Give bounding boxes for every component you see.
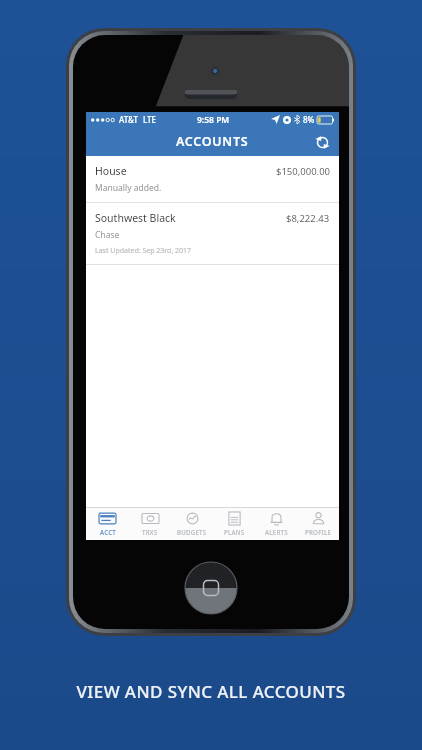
staticText: ALERTS <box>265 528 288 536</box>
button[interactable]: ALERTS <box>255 508 297 540</box>
button[interactable]: TRXS <box>129 508 171 540</box>
staticText: ACCOUNTS <box>176 133 249 150</box>
button[interactable]: House <box>86 156 339 202</box>
staticText: Chase <box>95 229 120 241</box>
staticText: $8,222.43 <box>286 212 330 225</box>
staticText: BUDGETS <box>177 528 207 536</box>
staticText: Last Updated: Sep 23rd, 2017 <box>95 246 192 256</box>
button[interactable]: ACCT <box>86 508 129 540</box>
staticText: $150,000.00 <box>276 165 330 178</box>
staticText: Southwest Black <box>95 211 176 225</box>
staticText: TRXS <box>142 528 158 536</box>
staticText: AT&T <box>119 114 138 125</box>
staticText: VIEW AND SYNC ALL ACCOUNTS <box>76 680 346 703</box>
button[interactable]: BUDGETS <box>171 508 213 540</box>
staticText: 9:58 PM <box>197 114 230 126</box>
button[interactable]: Southwest Black <box>86 203 339 264</box>
staticText: Manually added. <box>95 182 162 194</box>
button[interactable]: PROFILE <box>297 508 339 540</box>
staticText: PLANS <box>224 528 245 536</box>
button[interactable]: Sync accounts <box>311 131 333 153</box>
button[interactable]: PLANS <box>213 508 255 540</box>
staticText: ACCT <box>100 528 116 536</box>
staticText: 8% <box>303 114 315 125</box>
staticText: House <box>95 164 127 178</box>
staticText: LTE <box>143 114 157 125</box>
staticText: PROFILE <box>305 528 332 536</box>
